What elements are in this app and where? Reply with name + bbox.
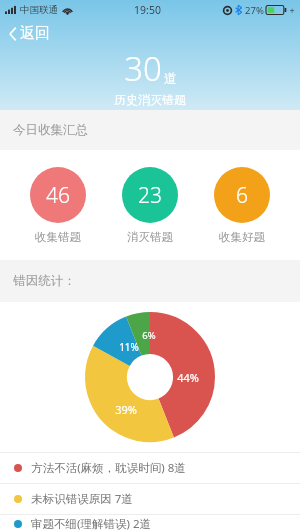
button[interactable]: 23: [116, 163, 184, 248]
staticText: +: [289, 4, 295, 16]
staticText: 中国联通: [20, 4, 58, 16]
button[interactable]: 审题不细(理解错误) 2道: [0, 515, 300, 532]
staticText: 错因统计：: [13, 273, 76, 289]
staticText: 6%: [142, 329, 156, 342]
staticText: 23: [138, 181, 162, 210]
staticText: 历史消灭错题: [114, 92, 186, 107]
staticText: 审题不细(理解错误) 2道: [31, 516, 151, 532]
staticText: 未标识错误原因 7道: [31, 491, 133, 507]
staticText: 44%: [177, 370, 199, 385]
staticText: 11%: [119, 340, 139, 354]
staticText: 27%: [245, 4, 264, 17]
staticText: 39%: [115, 402, 137, 417]
button[interactable]: 方法不活(麻烦，耽误时间) 8道: [0, 453, 300, 483]
button[interactable]: 未标识错误原因 7道: [0, 484, 300, 514]
staticText: 返回: [20, 24, 50, 43]
staticText: 收集好题: [219, 230, 265, 244]
staticText: 今日收集汇总: [13, 122, 88, 138]
staticText: 46: [46, 181, 70, 210]
staticText: 19:50: [134, 3, 161, 17]
staticText: 道: [164, 70, 177, 86]
staticText: 方法不活(麻烦，耽误时间) 8道: [31, 460, 186, 476]
staticText: 6: [236, 181, 248, 210]
staticText: 30: [124, 46, 162, 91]
button[interactable]: 返回: [0, 21, 64, 46]
staticText: 消灭错题: [127, 230, 173, 244]
button[interactable]: 6: [208, 163, 276, 248]
button[interactable]: 46: [24, 163, 92, 248]
staticText: 收集错题: [35, 230, 81, 244]
